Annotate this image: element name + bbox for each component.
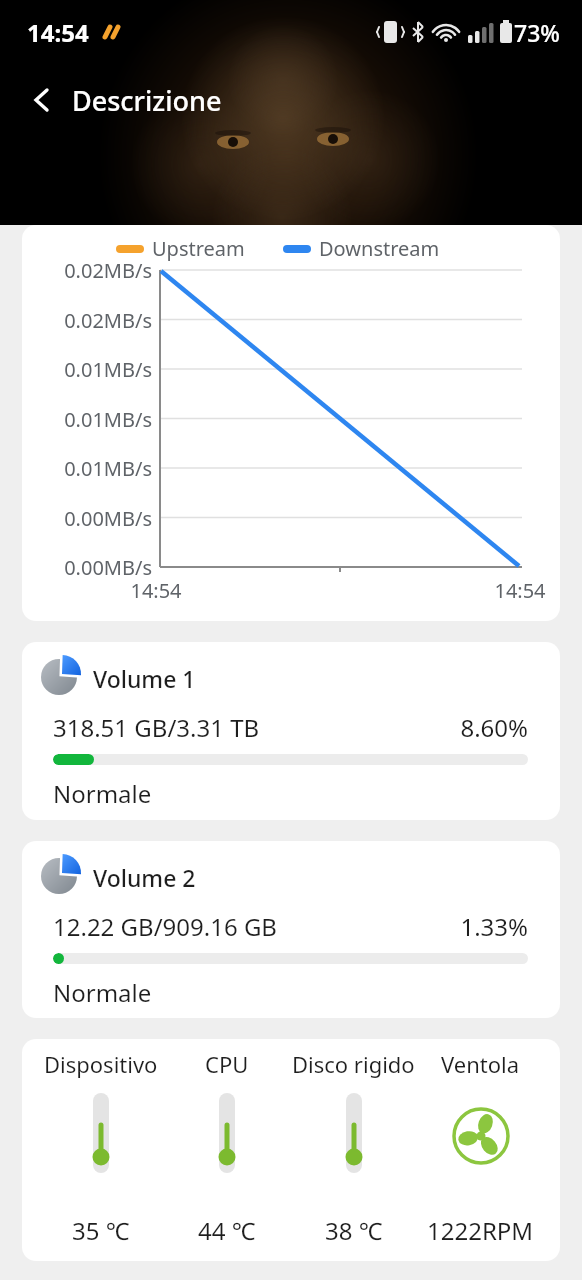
staticText: CPU [205,1049,249,1079]
staticText: Normale [53,777,152,810]
button[interactable] [22,80,62,120]
staticText: Volume 2 [93,862,196,893]
staticText: 35 ℃ [72,1214,130,1247]
staticText: 0.01MB/s [22,406,152,433]
staticText: 0.00MB/s [22,505,152,532]
staticText: 14:54 [116,577,196,604]
button[interactable]: Volume 2 [22,841,560,1018]
staticText: Disco rigido [292,1049,415,1079]
staticText: 8.60% [53,711,528,744]
staticText: Upstream [152,235,245,262]
staticText: 0.01MB/s [22,356,152,383]
staticText: 73% [514,17,560,48]
staticText: 14:54 [480,577,560,604]
staticText: 0.02MB/s [22,257,152,284]
staticText: 14:54 [27,16,89,49]
staticText: 318.51 GB/3.31 TB [53,711,260,744]
staticText: Volume 1 [93,663,196,694]
staticText: 0.01MB/s [22,455,152,482]
staticText: 1.33% [53,910,528,943]
staticText: 44 ℃ [198,1214,256,1247]
staticText: 38 ℃ [325,1214,383,1247]
staticText: Dispositivo [44,1049,158,1079]
staticText: Downstream [319,235,440,262]
staticText: 1222RPM [427,1214,534,1247]
staticText: 0.02MB/s [22,307,152,334]
button[interactable]: Volume 1 [22,642,560,820]
staticText: Ventola [441,1049,520,1079]
staticText: 0.00MB/s [22,554,152,581]
staticText: Descrizione [72,82,222,119]
staticText: 12.22 GB/909.16 GB [53,910,277,943]
staticText: Normale [53,976,152,1009]
